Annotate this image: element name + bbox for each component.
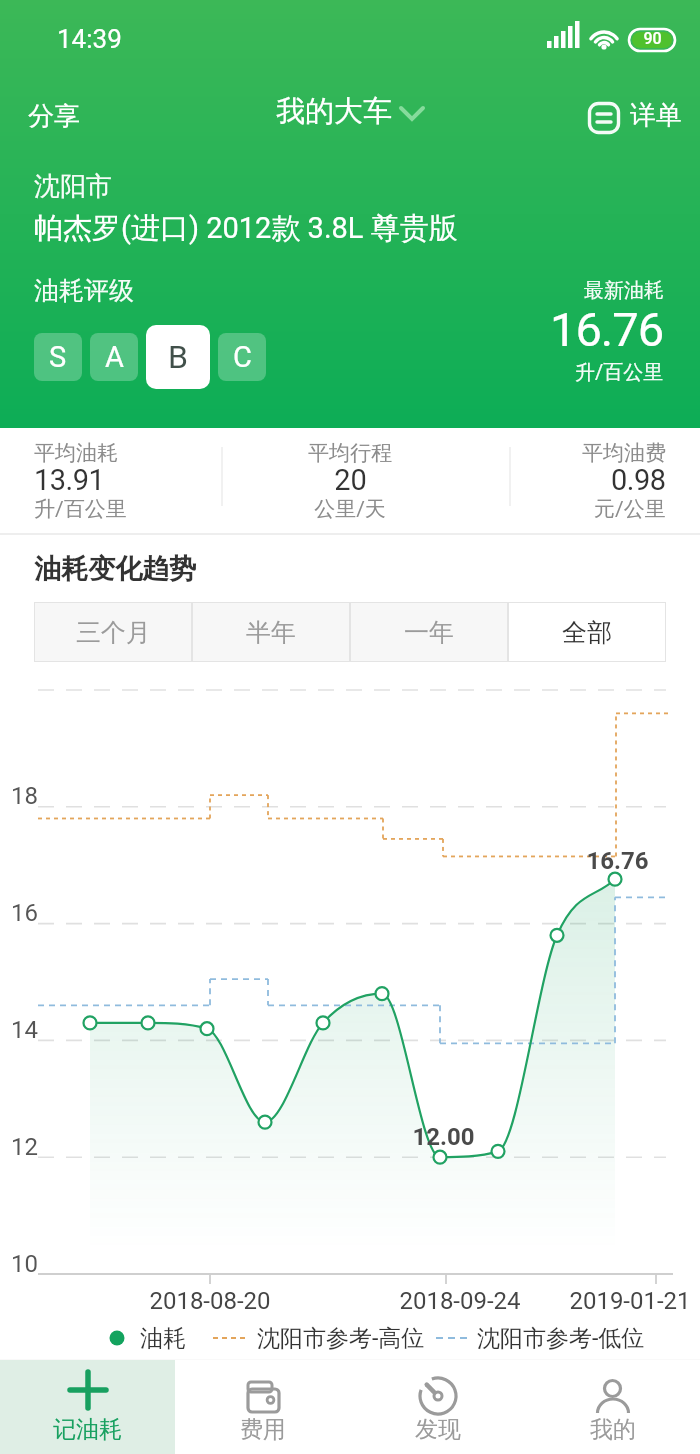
staticText: 12: [11, 1133, 38, 1161]
staticText: 最新油耗: [584, 278, 664, 303]
staticText: 0.98: [611, 463, 666, 497]
staticText: 油耗变化趋势: [34, 552, 196, 586]
staticText: 油耗评级: [34, 275, 134, 306]
button[interactable]: 全部: [508, 602, 666, 662]
button[interactable]: 发现: [350, 1360, 525, 1454]
staticText: 16: [11, 899, 38, 927]
button[interactable]: 我的大车: [249, 88, 419, 134]
staticText: C: [233, 340, 252, 374]
staticText: 详单: [630, 99, 682, 132]
staticText: 升/百公里: [575, 360, 664, 385]
staticText: 14: [11, 1016, 38, 1044]
staticText: 2019-01-21: [569, 1287, 691, 1315]
staticText: 记油耗: [53, 1415, 122, 1444]
staticText: 平均油费: [582, 440, 666, 466]
staticText: 平均行程: [308, 440, 392, 466]
staticText: 20: [334, 463, 367, 497]
staticText: 油耗: [140, 1324, 186, 1353]
button[interactable]: 详单: [580, 90, 690, 134]
staticText: 元/公里: [594, 496, 666, 522]
staticText: 12.00: [412, 1123, 475, 1151]
button[interactable]: 分享: [18, 92, 70, 125]
staticText: 半年: [246, 617, 296, 648]
staticText: 公里/天: [314, 496, 386, 522]
staticText: 16.76: [586, 847, 649, 875]
staticText: 一年: [404, 617, 454, 648]
staticText: 18: [11, 782, 38, 810]
staticText: 10: [11, 1250, 38, 1278]
staticText: 我的大车: [276, 93, 392, 130]
button[interactable]: B: [146, 325, 210, 389]
staticText: 14:39: [57, 24, 122, 54]
staticText: 2018-09-24: [399, 1287, 521, 1315]
staticText: S: [49, 340, 67, 374]
staticText: 我的: [590, 1415, 636, 1444]
staticText: 升/百公里: [34, 496, 127, 522]
staticText: 发现: [415, 1415, 461, 1444]
button[interactable]: A: [90, 333, 138, 381]
button[interactable]: 半年: [192, 602, 350, 662]
staticText: 三个月: [76, 617, 151, 648]
staticText: 全部: [562, 617, 612, 648]
staticText: 13.91: [34, 463, 105, 497]
staticText: B: [168, 338, 188, 376]
button[interactable]: S: [34, 333, 82, 381]
button[interactable]: 费用: [175, 1360, 350, 1454]
button[interactable]: C: [218, 333, 266, 381]
button[interactable]: 记油耗: [0, 1360, 175, 1454]
button[interactable]: 一年: [350, 602, 508, 662]
button[interactable]: 三个月: [34, 602, 192, 662]
staticText: 90: [643, 29, 662, 48]
staticText: 沈阳市参考-低位: [477, 1324, 645, 1353]
staticText: 平均油耗: [34, 440, 118, 466]
staticText: 沈阳市参考-高位: [257, 1324, 425, 1353]
button[interactable]: 我的: [525, 1360, 700, 1454]
staticText: 2018-08-20: [149, 1287, 271, 1315]
staticText: A: [105, 340, 124, 374]
staticText: 分享: [28, 100, 80, 133]
staticText: 16.76: [550, 302, 664, 357]
staticText: 帕杰罗(进口) 2012款 3.8L 尊贵版: [34, 210, 458, 247]
staticText: 费用: [240, 1415, 286, 1444]
staticText: 沈阳市: [34, 170, 112, 203]
